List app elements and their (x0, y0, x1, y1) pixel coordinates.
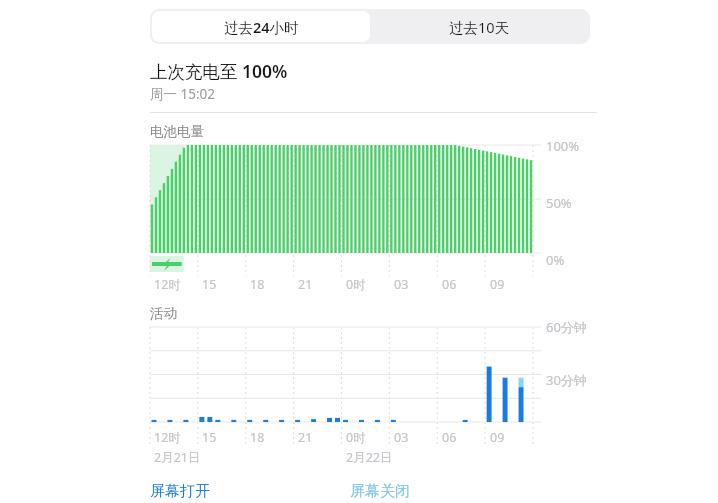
staticText: 09 (490, 429, 505, 446)
staticText: 电池电量 (150, 123, 204, 140)
staticText: 2月22日 (346, 449, 393, 466)
staticText: 屏幕关闭 (350, 482, 410, 501)
staticText: 21 (298, 276, 313, 293)
staticText: 上次充电至 100% (150, 59, 288, 83)
staticText: 2月21日 (154, 449, 201, 466)
button[interactable]: 屏幕打开 (150, 482, 210, 501)
staticText: 21 (298, 429, 313, 446)
button[interactable]: 屏幕关闭 (350, 482, 410, 501)
staticText: 18 (250, 276, 265, 293)
staticText: 屏幕打开 (150, 482, 210, 501)
button[interactable]: 过去10天 (370, 11, 588, 42)
staticText: 03 (394, 429, 409, 446)
staticText: 15 (202, 276, 217, 293)
staticText: 100% (546, 137, 580, 155)
staticText: 09 (490, 276, 505, 293)
staticText: 06 (442, 429, 457, 446)
staticText: 12时 (154, 276, 181, 293)
staticText: 06 (442, 276, 457, 293)
staticText: 30分钟 (546, 371, 587, 389)
staticText: 周一 15:02 (150, 85, 216, 103)
staticText: 过去24小时 (224, 17, 299, 37)
staticText: 0% (546, 251, 565, 269)
staticText: 18 (250, 429, 265, 446)
staticText: 03 (394, 276, 409, 293)
staticText: 活动 (150, 305, 177, 322)
staticText: 过去10天 (449, 17, 510, 37)
staticText: 60分钟 (546, 318, 587, 336)
staticText: 50% (546, 194, 572, 212)
staticText: 15 (202, 429, 217, 446)
button[interactable]: 过去24小时 (152, 11, 370, 42)
staticText: 0时 (346, 429, 366, 446)
staticText: 12时 (154, 429, 181, 446)
staticText: 0时 (346, 276, 366, 293)
